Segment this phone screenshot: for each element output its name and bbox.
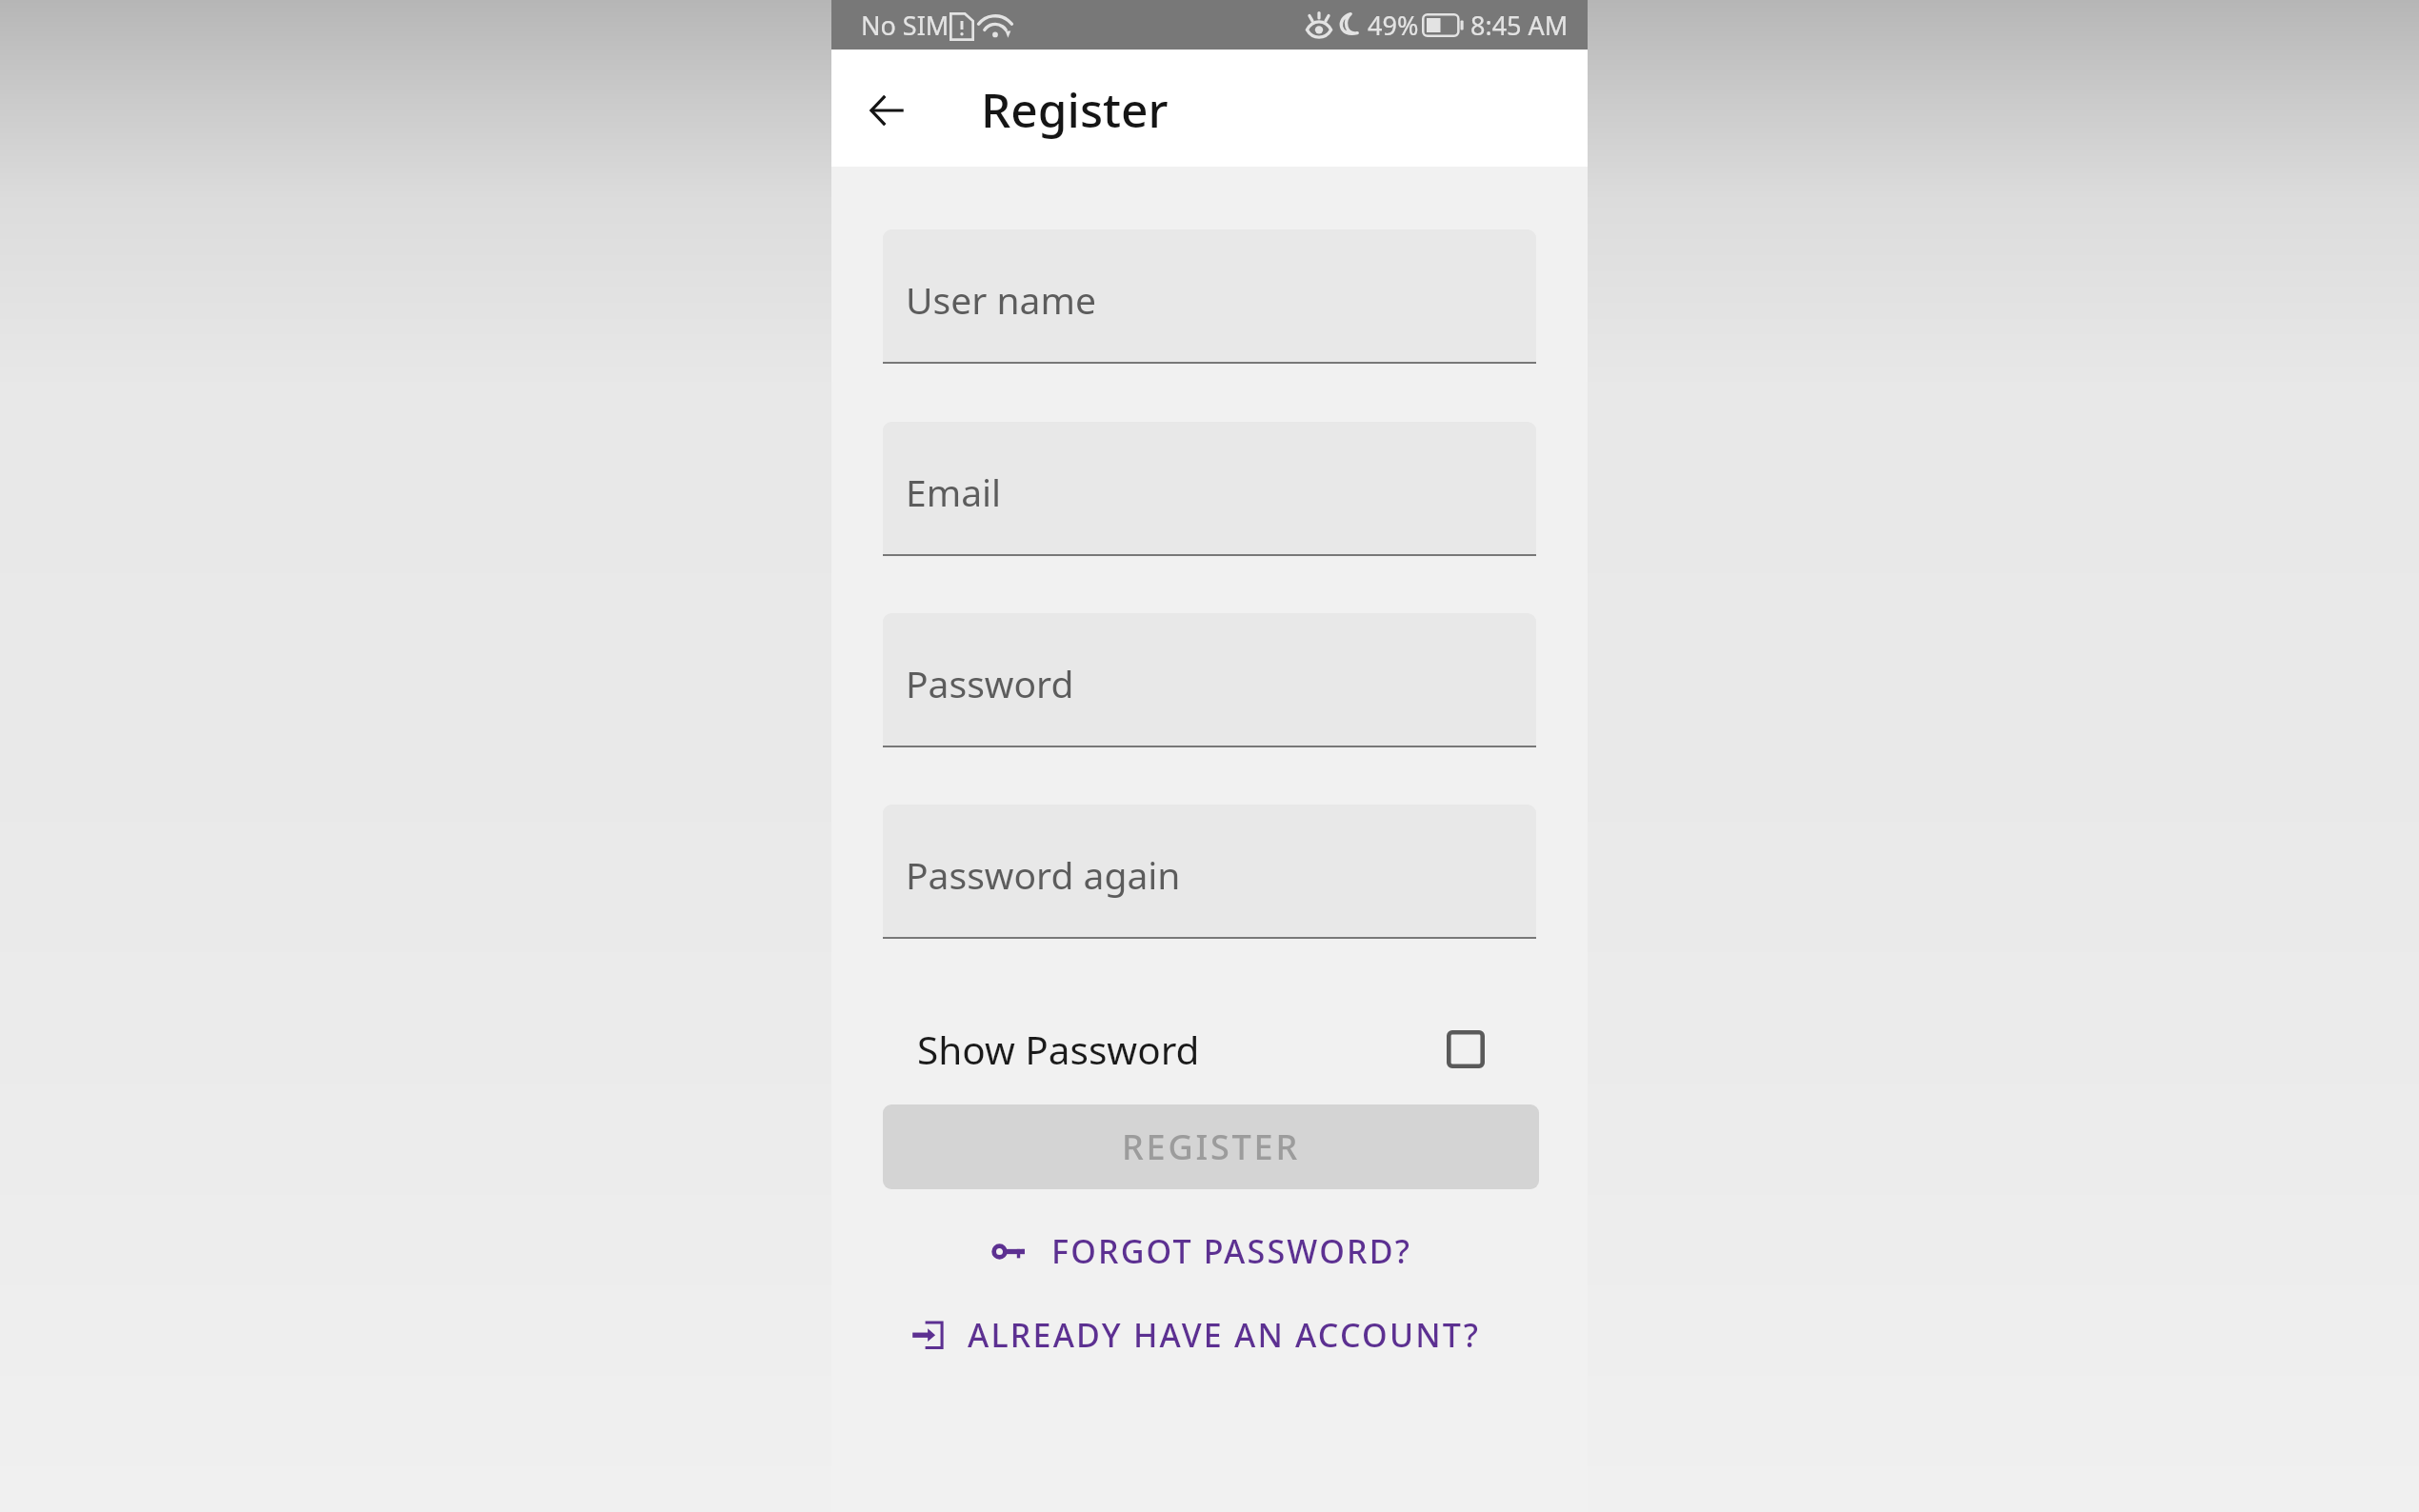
staticText: No SIM xyxy=(861,8,950,43)
button[interactable]: FORGOT PASSWORD? xyxy=(969,1213,1585,1289)
button[interactable]: Show Password xyxy=(883,1015,1536,1084)
button[interactable] xyxy=(883,613,1536,746)
staticText: 49% xyxy=(1368,8,1419,43)
staticText: Password again xyxy=(906,849,1181,900)
staticText: REGISTER xyxy=(1122,1124,1300,1170)
button[interactable]: REGISTER xyxy=(883,1104,1539,1189)
button[interactable] xyxy=(883,229,1536,362)
button[interactable]: Navigate back xyxy=(841,58,932,163)
staticText: 8:45 AM xyxy=(1470,8,1569,43)
staticText: Register xyxy=(981,77,1169,142)
button[interactable] xyxy=(883,805,1536,937)
button[interactable] xyxy=(883,422,1536,554)
staticText: Show Password xyxy=(917,1024,1200,1076)
staticText: FORGOT PASSWORD? xyxy=(1051,1229,1412,1273)
staticText: Email xyxy=(906,467,1002,517)
staticText: Password xyxy=(906,658,1074,708)
staticText: User name xyxy=(906,274,1096,325)
button[interactable]: ALREADY HAVE AN ACCOUNT? xyxy=(890,1297,1501,1373)
staticText: ALREADY HAVE AN ACCOUNT? xyxy=(968,1313,1481,1357)
